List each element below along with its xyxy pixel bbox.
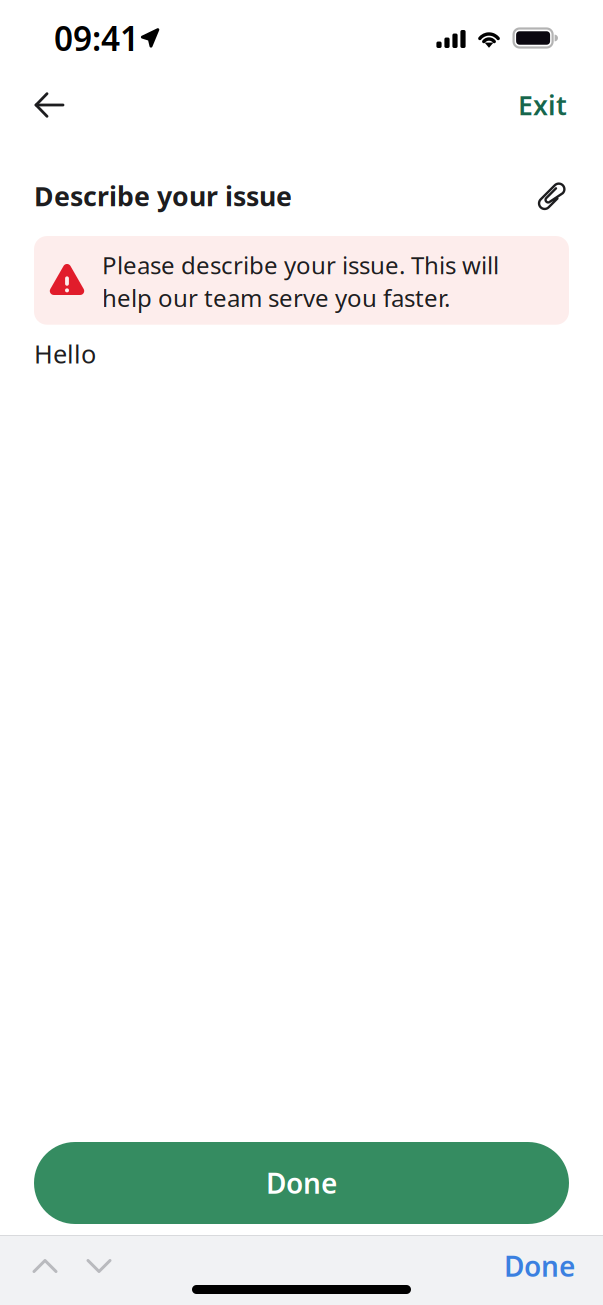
staticText: Hello — [34, 337, 96, 370]
staticText: Done — [266, 1164, 337, 1202]
button[interactable]: Done — [490, 1236, 589, 1296]
button[interactable]: Exit — [496, 73, 603, 137]
staticText: 09:41 — [54, 16, 139, 60]
button[interactable]: Attach file — [525, 175, 603, 217]
button[interactable]: Previous field — [18, 1246, 72, 1286]
staticText: Done — [504, 1247, 575, 1285]
staticText: Describe your issue — [34, 178, 292, 214]
staticText: Exit — [518, 87, 567, 123]
button[interactable]: Back — [0, 77, 87, 132]
staticText: Please describe your issue. This will he… — [102, 249, 499, 314]
button[interactable]: Done — [0, 1122, 603, 1235]
button[interactable]: Next field — [72, 1246, 126, 1286]
